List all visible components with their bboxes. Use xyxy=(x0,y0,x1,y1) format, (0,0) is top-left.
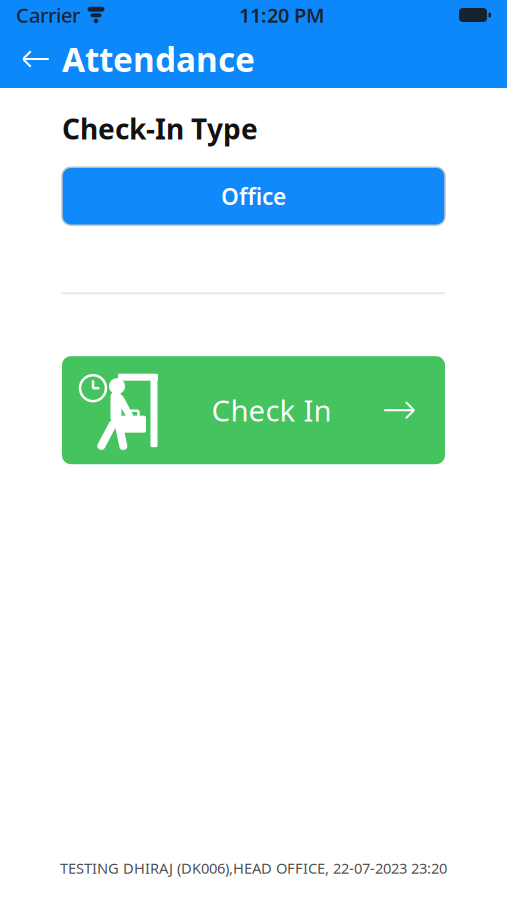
button[interactable]: Check In xyxy=(62,356,445,464)
staticText: 11:20 PM xyxy=(239,2,325,28)
staticText: Attendance xyxy=(62,37,255,81)
staticText: Check In xyxy=(211,391,331,430)
staticText: Check-In Type xyxy=(62,110,258,147)
staticText: TESTING DHIRAJ (DK006),HEAD OFFICE, 22-0… xyxy=(60,858,447,878)
button[interactable]: Back xyxy=(10,30,62,88)
staticText: Carrier xyxy=(16,2,80,28)
staticText: Office xyxy=(221,181,286,211)
button[interactable]: Office xyxy=(62,167,445,225)
